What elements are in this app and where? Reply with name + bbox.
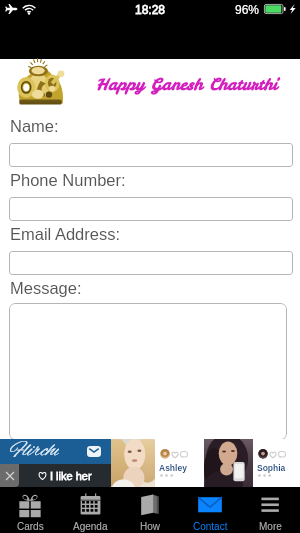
staticText: Sophia [257, 463, 286, 472]
staticText: More [259, 521, 282, 532]
button[interactable]: How [120, 487, 180, 533]
button[interactable] [9, 143, 293, 167]
button[interactable] [9, 303, 287, 440]
button[interactable]: I like her [19, 464, 111, 487]
staticText: Email Address: [10, 225, 121, 243]
staticText: Message: [10, 279, 82, 297]
staticText: Phone Number: [10, 171, 126, 189]
staticText: 96% [235, 3, 260, 16]
staticText: Contact [193, 521, 228, 532]
staticText: How [140, 521, 161, 532]
button[interactable] [9, 197, 293, 221]
button[interactable]: Ashley [111, 439, 204, 487]
staticText: Agenda [73, 521, 108, 532]
staticText: Happy Ganesh Chaturthi [96, 73, 278, 95]
other: Messages [87, 446, 101, 457]
button[interactable]: Cards [0, 487, 60, 533]
button[interactable]: Agenda [60, 487, 120, 533]
button[interactable]: Close ad [0, 464, 19, 487]
button[interactable]: Sophia [204, 439, 300, 487]
button[interactable]: Flirchi [0, 439, 111, 464]
staticText: Name: [10, 117, 59, 135]
staticText: Ashley [159, 463, 187, 472]
staticText: Flirchi [9, 438, 59, 463]
staticText: I like her [50, 470, 92, 482]
button[interactable]: More [240, 487, 300, 533]
button[interactable]: Contact [180, 487, 240, 533]
button[interactable] [9, 251, 293, 275]
staticText: 18:28 [135, 3, 166, 16]
staticText: Cards [17, 521, 44, 532]
